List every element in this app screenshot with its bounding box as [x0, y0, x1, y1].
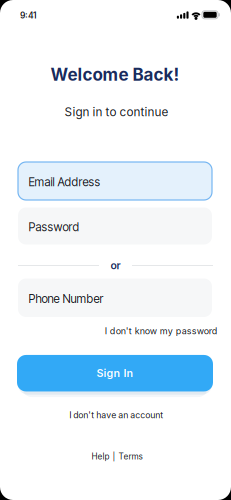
staticText: |: [112, 451, 115, 461]
button[interactable]: I don't have an account: [69, 410, 163, 420]
button[interactable]: Help: [91, 451, 109, 461]
staticText: I don't have an account: [69, 410, 163, 420]
staticText: 9:41: [20, 10, 37, 20]
button[interactable]: Terms: [118, 451, 142, 461]
button[interactable]: Password: [18, 207, 212, 244]
button[interactable]: Sign In: [17, 355, 213, 391]
button[interactable]: Phone Number: [18, 278, 212, 317]
staticText: Password: [28, 220, 79, 234]
staticText: Phone Number: [28, 292, 103, 306]
staticText: or: [110, 259, 120, 272]
staticText: Terms: [118, 451, 142, 461]
button[interactable]: Email Address: [18, 162, 212, 200]
button[interactable]: I don't know my password: [105, 326, 218, 336]
staticText: Help: [91, 451, 109, 461]
staticText: Email Address: [28, 175, 100, 189]
staticText: Welcome Back!: [50, 64, 179, 85]
staticText: Sign In: [96, 367, 133, 380]
staticText: Sign in to continue: [64, 105, 168, 119]
staticText: I don't know my password: [105, 326, 218, 336]
